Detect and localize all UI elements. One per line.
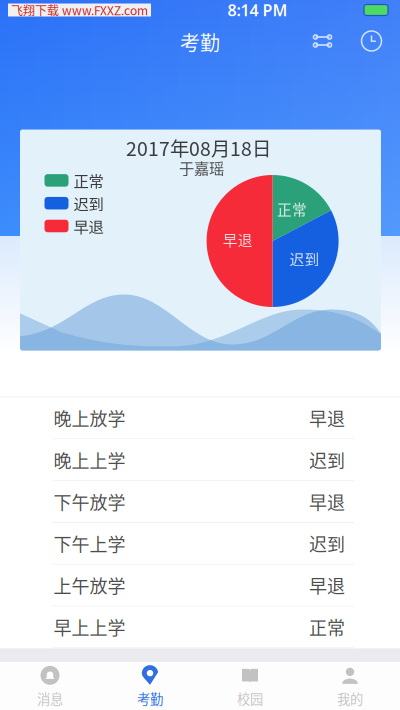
button[interactable]: 我的 (300, 662, 400, 710)
button[interactable]: 晚上放学 (0, 398, 400, 439)
button[interactable]: 上午放学 (0, 565, 400, 607)
staticText: 考勤 (137, 689, 163, 708)
button[interactable]: 考勤 (100, 662, 200, 710)
staticText: 8:14 PM (227, 0, 287, 21)
staticText: 下午放学 (53, 489, 125, 515)
staticText: 考勤 (180, 27, 220, 56)
staticText: 迟到 (289, 248, 319, 269)
staticText: 正常 (309, 614, 345, 640)
staticText: 我的 (337, 689, 363, 708)
staticText: 早退 (73, 215, 103, 237)
staticText: 飞翔下载 www.FXXZ.com (11, 1, 148, 19)
staticText: 迟到 (309, 530, 345, 556)
button[interactable]: Filter (310, 29, 334, 53)
staticText: 早上上学 (53, 614, 125, 640)
button[interactable]: 消息 (0, 662, 100, 710)
staticText: 早退 (309, 489, 345, 515)
staticText: 消息 (37, 689, 63, 708)
staticText: 早退 (309, 405, 345, 431)
button[interactable]: 下午上学 (0, 523, 400, 565)
staticText: 上午放学 (53, 572, 125, 598)
staticText: 校园 (237, 689, 263, 708)
staticText: 正常 (277, 198, 307, 220)
staticText: 晚上放学 (53, 405, 125, 431)
staticText: 早退 (309, 572, 345, 598)
staticText: 早退 (223, 229, 253, 250)
button[interactable]: 早上上学 (0, 607, 400, 648)
staticText: 迟到 (309, 447, 345, 473)
staticText: 于嘉瑶 (179, 156, 224, 179)
button[interactable]: History (359, 29, 383, 53)
staticText: 2017年08月18日 (126, 133, 271, 161)
staticText: 晚上上学 (53, 447, 125, 473)
button[interactable]: 晚上上学 (0, 439, 400, 481)
button[interactable]: 下午放学 (0, 481, 400, 523)
staticText: 迟到 (73, 192, 103, 214)
button[interactable]: 校园 (200, 662, 300, 710)
staticText: 下午上学 (53, 530, 125, 556)
staticText: 正常 (73, 169, 103, 191)
